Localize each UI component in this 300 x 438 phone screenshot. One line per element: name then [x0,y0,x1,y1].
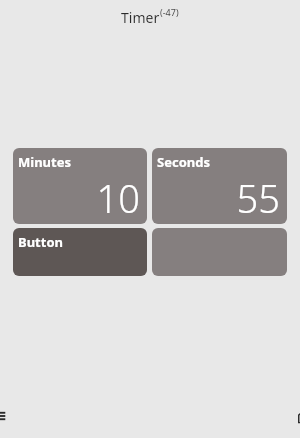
button[interactable]: Button [13,228,147,276]
button[interactable]: Minutes [13,148,147,224]
button[interactable] [152,228,287,276]
staticText: (-47) [160,6,179,18]
button[interactable]: Seconds [152,148,287,224]
staticText: Seconds [157,153,210,171]
staticText: 55 [236,172,280,224]
staticText: Button [18,233,63,251]
button[interactable]: Home [150,394,300,438]
staticText: Timer [121,8,160,27]
staticText: Minutes [18,153,71,171]
staticText: 10 [96,172,140,224]
button[interactable]: Menu [0,394,150,438]
